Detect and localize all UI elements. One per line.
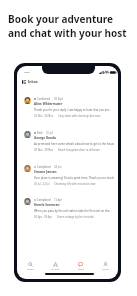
other: Menu (22, 80, 26, 84)
staticText: Confirmed (37, 97, 51, 101)
staticText: 03 Sept (54, 97, 64, 101)
staticText: and chat with your host (8, 26, 127, 40)
button[interactable]: Inbox (68, 262, 93, 271)
staticText: When you pass by the rail station take t… (34, 209, 112, 213)
button[interactable]: Completed (17, 195, 118, 229)
other: Status (99, 71, 111, 74)
staticText: Inbox (78, 268, 84, 271)
other: Inbox (78, 262, 83, 267)
staticText: Completed (37, 198, 51, 202)
other: Profile (103, 262, 108, 267)
staticText: Cosy cabin with stunning lake view (58, 114, 101, 118)
staticText: Henrik Sorensen (34, 203, 60, 207)
button[interactable]: My trips (43, 262, 68, 271)
staticText: Charming loft with mountain view (54, 182, 96, 186)
staticText: Green cottage by the riverside (57, 215, 94, 219)
staticText: Thank you for your reply. I am happy to … (34, 108, 112, 112)
staticText: Beach bungalow close to old town (58, 148, 100, 152)
staticText: Simone Jansen (34, 170, 57, 174)
staticText: Aline Wildermuter (34, 102, 63, 106)
staticText: 18:30 (24, 71, 30, 74)
button[interactable]: Confirmed (17, 94, 118, 128)
staticText: Paid (37, 131, 43, 135)
staticText: Search (27, 268, 34, 271)
button[interactable]: Completed (17, 162, 118, 196)
staticText: Your place is amazing! I had a great tim… (34, 176, 114, 180)
staticText: 20 Jul - 22 Jul (34, 182, 50, 186)
staticText: 03 Nov - 08 Nov (34, 148, 54, 152)
staticText: 25 Jul (46, 131, 53, 135)
button[interactable]: Profile (93, 262, 118, 271)
staticText: 02 Nov - 04 Nov (34, 114, 54, 118)
staticText: Inbox (28, 79, 38, 84)
staticText: 24 Jun (54, 165, 62, 169)
other: Search (28, 262, 33, 267)
staticText: Book your adventure (8, 12, 114, 26)
staticText: My trips (51, 268, 60, 271)
staticText: 05 Apr - 09 Apr (34, 215, 53, 219)
staticText: 13 Apr (54, 198, 62, 202)
button[interactable]: Search (17, 262, 43, 271)
staticText: Completed (37, 165, 51, 169)
staticText: As promised here some details about how … (34, 142, 114, 146)
other: My trips (53, 262, 58, 267)
button[interactable]: Paid (17, 128, 118, 162)
staticText: George Knoda (34, 136, 56, 140)
staticText: Profile (102, 268, 109, 271)
